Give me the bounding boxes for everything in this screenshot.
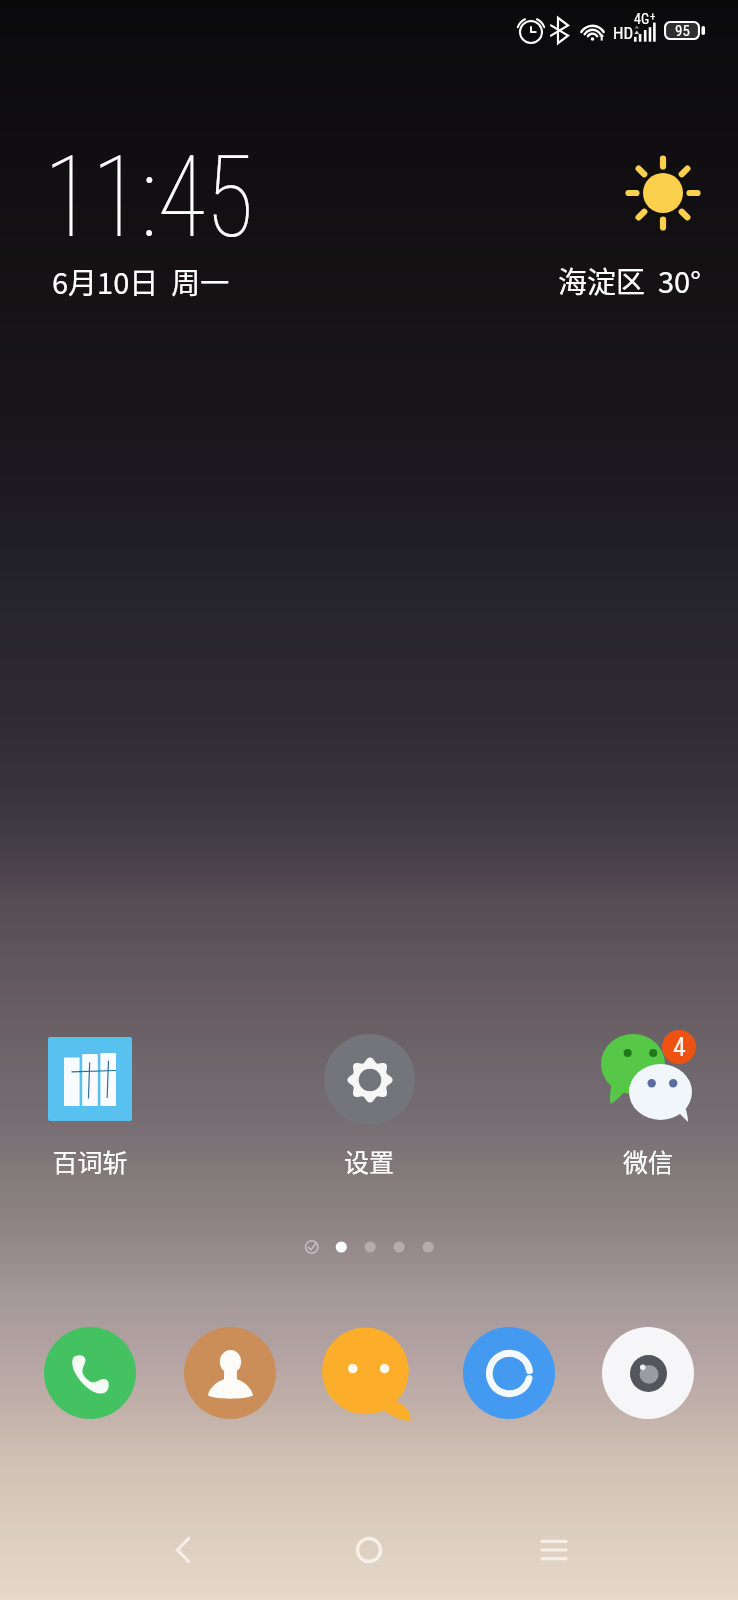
button[interactable]: 海淀区 30° (558, 259, 701, 301)
staticText: 微信 (582, 1143, 714, 1179)
staticText: 海淀区 30° (558, 259, 701, 301)
staticText: 4 (673, 1032, 686, 1062)
button[interactable]: Browser (463, 1327, 555, 1419)
button[interactable]: Messages (322, 1329, 414, 1421)
button[interactable]: Home (334, 1515, 404, 1585)
staticText: + (650, 10, 656, 23)
staticText: 95 (675, 22, 690, 40)
staticText: 4G (634, 11, 650, 27)
staticText: 设置 (303, 1143, 435, 1179)
button[interactable]: Phone (44, 1327, 136, 1419)
button[interactable]: Menu (519, 1515, 589, 1585)
staticText: 百词斩 (24, 1143, 156, 1179)
staticText: 11:45 (44, 131, 254, 263)
button[interactable]: 4 (582, 1028, 714, 1179)
button[interactable]: Camera (602, 1327, 694, 1419)
staticText: 6月10日 周一 (52, 260, 230, 302)
button[interactable]: 设置 (303, 1028, 435, 1179)
button[interactable]: 百词斩 (24, 1028, 156, 1179)
button[interactable]: Back (148, 1515, 218, 1585)
staticText: HD (613, 23, 634, 43)
button[interactable]: Contacts (184, 1327, 276, 1419)
button[interactable]: 11:45 (44, 131, 283, 305)
